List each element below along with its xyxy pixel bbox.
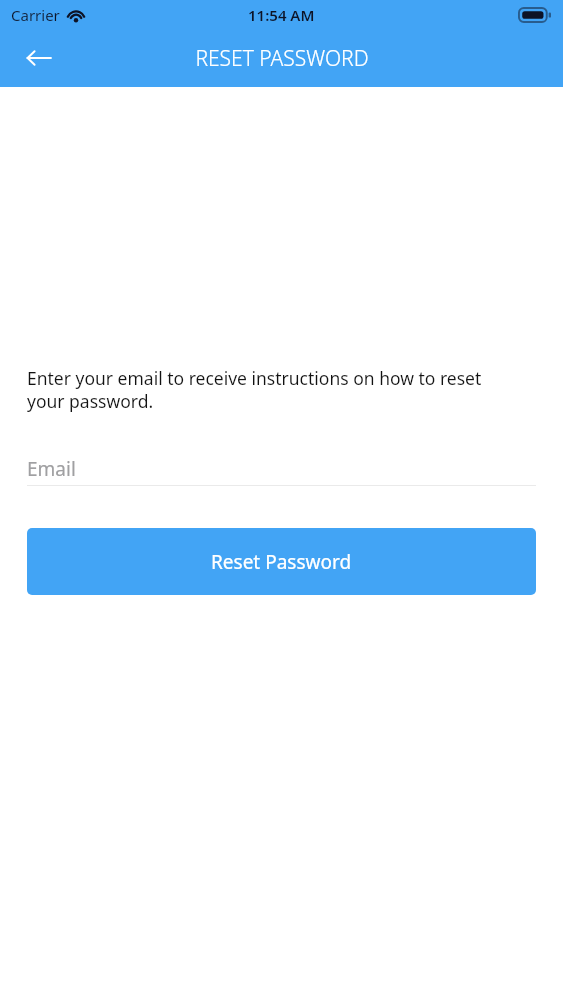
staticText: Email	[27, 456, 76, 482]
staticText: RESET PASSWORD	[195, 44, 369, 73]
staticText: 11:54 AM	[248, 5, 315, 25]
staticText: Enter your email to receive instructions…	[27, 366, 507, 414]
staticText: Carrier	[11, 5, 60, 25]
button[interactable]: Email	[27, 452, 536, 486]
staticText: Reset Password	[211, 549, 352, 575]
button[interactable]: Back	[15, 34, 63, 82]
button[interactable]: Reset Password	[27, 528, 536, 595]
